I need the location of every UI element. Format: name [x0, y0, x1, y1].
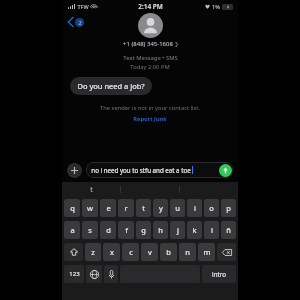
staticText: TFW [77, 3, 89, 10]
button[interactable]: q [64, 199, 80, 217]
button[interactable]: Contact info [138, 13, 163, 38]
button[interactable]: z [85, 243, 101, 261]
button[interactable]: intro [202, 265, 236, 283]
button[interactable]: Shift [64, 243, 83, 261]
button[interactable]: ñ [221, 221, 236, 239]
button[interactable]: a [64, 221, 80, 239]
staticText: 2 [78, 19, 82, 26]
button[interactable]: Do you need a job? [70, 77, 152, 95]
staticText: e [106, 203, 111, 213]
button[interactable]: x [103, 243, 120, 261]
staticText: v [148, 247, 152, 257]
button[interactable]: Dictate [104, 265, 118, 283]
staticText: intro [212, 270, 226, 278]
staticText: x [110, 247, 114, 257]
staticText: no i need you to stfu and eat a toe [91, 166, 191, 174]
button[interactable]: u [170, 199, 185, 217]
staticText: Today 2:00 PM [130, 63, 170, 71]
staticText: f [125, 225, 128, 235]
staticText: 2:14 PM [138, 2, 163, 11]
staticText: 1% [212, 3, 220, 10]
button[interactable]: w [82, 199, 98, 217]
staticText: +1 (848) 345-1608 [123, 40, 173, 48]
button[interactable]: p [221, 199, 236, 217]
staticText: p [226, 203, 231, 213]
button[interactable]: g [136, 221, 151, 239]
staticText: l [211, 225, 213, 235]
button[interactable]: r [118, 199, 134, 217]
staticText: m [203, 247, 211, 257]
button[interactable]: l [204, 221, 219, 239]
staticText: a [70, 225, 75, 235]
button[interactable]: Send [219, 164, 232, 177]
button[interactable]: v [141, 243, 158, 261]
staticText: o [209, 203, 214, 213]
button[interactable]: no i need you to stfu and eat a toe [86, 162, 233, 178]
staticText: Do you need a job? [77, 81, 145, 91]
staticText: Text Message • SMS [123, 54, 178, 62]
button[interactable]: s [82, 221, 98, 239]
button[interactable]: Report Junk [129, 114, 171, 124]
staticText: j [177, 225, 179, 235]
staticText: n [185, 247, 190, 257]
staticText: w [87, 203, 93, 213]
button[interactable]: 123 [64, 265, 84, 283]
staticText: Report Junk [133, 115, 167, 123]
staticText: ñ [226, 225, 231, 235]
button[interactable]: n [179, 243, 196, 261]
button[interactable]: Change keyboard [86, 265, 102, 283]
staticText: r [124, 203, 128, 213]
button[interactable]: k [187, 221, 202, 239]
button[interactable]: b [160, 243, 177, 261]
staticText: z [91, 247, 95, 257]
button[interactable]: t [136, 199, 151, 217]
staticText: c [129, 247, 133, 257]
staticText: i [194, 203, 196, 213]
staticText: t [90, 185, 93, 194]
button[interactable]: Backspace [217, 243, 236, 261]
button[interactable]: d [100, 221, 116, 239]
button[interactable]: t [62, 182, 120, 196]
staticText: t [142, 203, 145, 213]
staticText: u [175, 203, 180, 213]
button[interactable]: o [204, 199, 219, 217]
staticText: y [159, 203, 163, 213]
staticText: k [192, 225, 197, 235]
button[interactable]: j [170, 221, 185, 239]
button[interactable]: f [118, 221, 134, 239]
staticText: d [106, 225, 111, 235]
staticText: The sender is not in your contact list. [100, 104, 200, 112]
button[interactable]: e [100, 199, 116, 217]
button[interactable]: Add attachment [67, 163, 82, 178]
staticText: q [70, 203, 75, 213]
button[interactable]: y [153, 199, 168, 217]
button[interactable]: h [153, 221, 168, 239]
staticText: 123 [69, 270, 80, 278]
button[interactable]: c [122, 243, 139, 261]
staticText: g [141, 225, 146, 235]
button[interactable]: Back to messages, 2 unread [66, 15, 86, 29]
staticText: b [166, 247, 171, 257]
button[interactable]: m [198, 243, 215, 261]
staticText: s [88, 225, 92, 235]
staticText: h [158, 225, 163, 235]
button[interactable]: i [187, 199, 202, 217]
